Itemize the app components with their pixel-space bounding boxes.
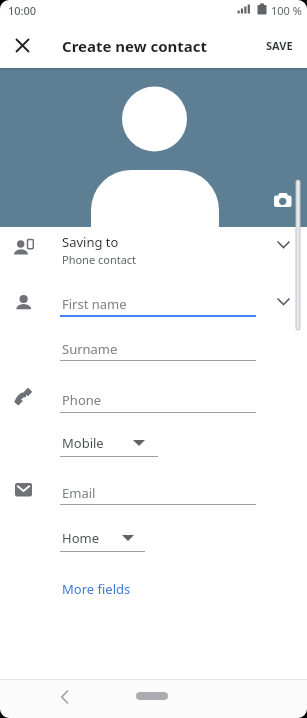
button[interactable] xyxy=(44,523,164,556)
staticText: SAVE xyxy=(266,38,293,53)
button[interactable] xyxy=(7,30,37,60)
button[interactable] xyxy=(44,384,307,417)
button[interactable] xyxy=(44,476,307,509)
button[interactable] xyxy=(44,286,307,319)
staticText: 10:00 xyxy=(8,3,37,18)
button[interactable] xyxy=(44,428,174,461)
staticText: More fields xyxy=(62,580,131,598)
staticText: Surname xyxy=(62,340,118,358)
button[interactable]: SAVE xyxy=(256,32,302,58)
staticText: Create new contact xyxy=(62,36,208,56)
staticText: First name xyxy=(62,295,127,313)
button[interactable] xyxy=(0,228,307,280)
staticText: Phone xyxy=(62,391,102,409)
button[interactable] xyxy=(50,570,150,602)
button[interactable] xyxy=(0,68,307,227)
button[interactable] xyxy=(44,332,307,365)
staticText: Mobile xyxy=(62,434,104,452)
staticText: Home xyxy=(62,529,99,547)
button[interactable] xyxy=(50,682,80,712)
staticText: Phone contact xyxy=(62,252,137,267)
staticText: 100 % xyxy=(271,3,302,18)
staticText: Email xyxy=(62,484,96,502)
staticText: Saving to xyxy=(62,233,119,251)
button[interactable] xyxy=(136,692,168,700)
